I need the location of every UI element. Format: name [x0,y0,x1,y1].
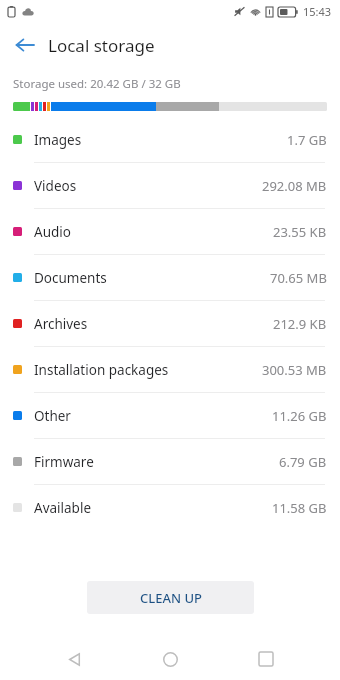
staticText: Videos [34,177,77,195]
staticText: Other [34,407,71,425]
staticText: 70.65 MB [270,269,327,287]
staticText: Available [34,499,91,517]
button[interactable]: Installation packages [0,347,340,392]
staticText: 11.58 GB [272,499,327,517]
staticText: Local storage [48,34,155,57]
staticText: 300.53 MB [262,361,327,379]
staticText: 23.55 KB [273,223,327,241]
staticText: 212.9 KB [273,315,327,333]
staticText: Firmware [34,453,94,471]
button[interactable]: Available [0,485,340,530]
staticText: Documents [34,269,107,287]
staticText: Archives [34,315,88,333]
staticText: 11.26 GB [272,407,327,425]
button[interactable]: Audio [0,209,340,254]
staticText: Images [34,131,82,149]
button[interactable]: Home [148,638,192,680]
staticText: Storage used: 20.42 GB / 32 GB [13,76,181,92]
staticText: Audio [34,223,71,241]
button[interactable]: Archives [0,301,340,346]
button[interactable]: Firmware [0,439,340,484]
staticText: 15:43 [303,4,332,19]
button[interactable]: Back [52,638,96,680]
staticText: CLEAN UP [140,589,202,607]
button[interactable]: Back [6,26,44,64]
button[interactable]: Images [0,117,340,162]
button[interactable]: Documents [0,255,340,300]
button[interactable]: Recents [244,638,288,680]
staticText: 1.7 GB [287,131,327,149]
button[interactable]: Videos [0,163,340,208]
staticText: Installation packages [34,361,169,379]
staticText: 292.08 MB [262,177,327,195]
button[interactable]: CLEAN UP [87,581,254,614]
button[interactable]: Other [0,393,340,438]
staticText: 6.79 GB [279,453,327,471]
